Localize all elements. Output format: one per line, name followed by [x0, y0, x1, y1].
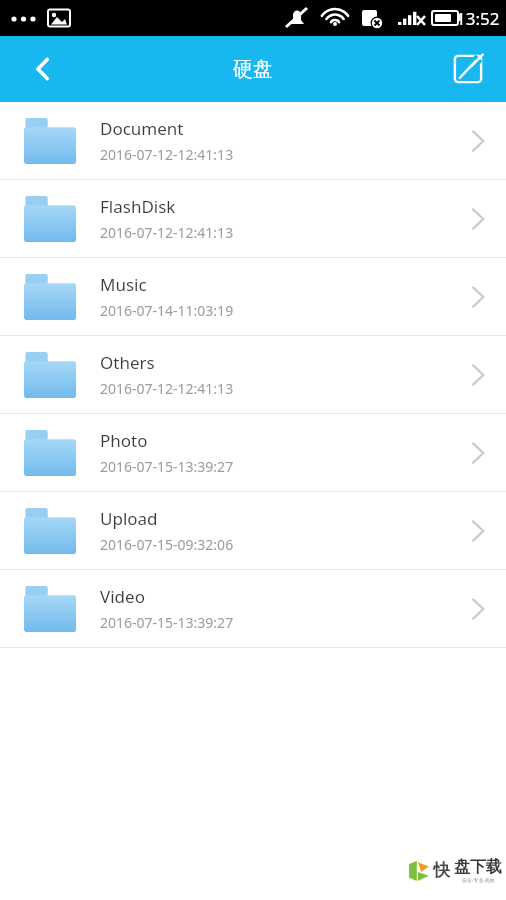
staticText: 13:52 — [456, 7, 500, 30]
staticText: 2016-07-12-12:41:13 — [100, 145, 234, 164]
button[interactable]: FlashDisk — [0, 180, 506, 258]
button[interactable]: Video — [0, 570, 506, 648]
staticText: Others — [100, 351, 155, 374]
button[interactable]: Edit — [430, 36, 506, 102]
staticText: 2016-07-14-11:03:19 — [100, 301, 234, 320]
button[interactable]: Photo — [0, 414, 506, 492]
staticText: 盘下载 — [454, 857, 502, 877]
staticText: 2016-07-12-12:41:13 — [100, 379, 234, 398]
staticText: 硬盘 — [233, 57, 273, 82]
staticText: 2016-07-15-13:39:27 — [100, 613, 234, 632]
button[interactable]: Others — [0, 336, 506, 414]
staticText: Video — [100, 585, 145, 608]
staticText: Music — [100, 273, 147, 296]
staticText: 安全·专业·高效 — [462, 877, 495, 884]
staticText: Photo — [100, 429, 148, 452]
button[interactable]: Document — [0, 102, 506, 180]
staticText: 2016-07-12-12:41:13 — [100, 223, 234, 242]
staticText: 2016-07-15-13:39:27 — [100, 457, 234, 476]
button[interactable]: Upload — [0, 492, 506, 570]
staticText: 2016-07-15-09:32:06 — [100, 535, 234, 554]
staticText: Upload — [100, 507, 158, 530]
button[interactable]: Back — [0, 36, 86, 102]
button[interactable]: Music — [0, 258, 506, 336]
staticText: Document — [100, 117, 184, 140]
staticText: 快 — [433, 860, 450, 881]
staticText: FlashDisk — [100, 195, 176, 218]
